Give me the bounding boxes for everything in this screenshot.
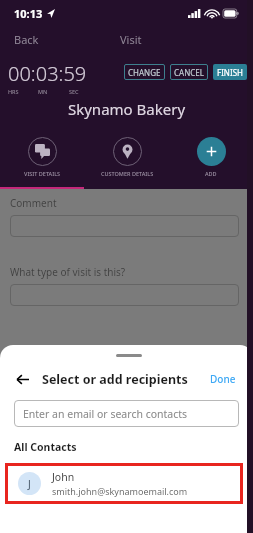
staticText: John	[52, 470, 75, 484]
button[interactable]: CANCEL	[170, 64, 208, 80]
staticText: Comment	[10, 196, 57, 210]
staticText: Select or add recipients	[42, 371, 188, 388]
button[interactable]: Back	[12, 369, 32, 389]
staticText: Visit	[120, 32, 142, 47]
staticText: VISIT DETAILS	[24, 170, 61, 177]
button[interactable]: FINISH	[213, 64, 247, 80]
staticText: ADD	[205, 170, 217, 177]
staticText: J	[28, 477, 31, 491]
staticText: All Contacts	[14, 440, 77, 454]
staticText: 10:13	[14, 6, 43, 21]
staticText: Enter an email or search contacts	[23, 407, 188, 421]
button[interactable]: CUSTOMER DETAILS	[85, 135, 169, 179]
button[interactable]: Back	[10, 30, 43, 49]
button[interactable]: Enter an email or search contacts	[14, 400, 239, 427]
button[interactable]: ADD	[169, 135, 253, 179]
staticText: 00:03:59	[8, 60, 87, 87]
staticText: CANCEL	[174, 67, 204, 78]
staticText: smith.john@skynamoemail.com	[52, 485, 188, 497]
staticText: Skynamo Bakery	[0, 99, 253, 119]
button[interactable]: Done	[207, 369, 239, 389]
staticText: What type of visit is this?	[10, 265, 126, 279]
button[interactable]: VISIT DETAILS	[0, 135, 85, 179]
staticText: SEC	[69, 88, 100, 95]
staticText: HRS	[8, 88, 38, 95]
button[interactable]: J	[8, 466, 240, 501]
staticText: CUSTOMER DETAILS	[101, 170, 154, 177]
staticText: FINISH	[217, 67, 243, 78]
staticText: CHANGE	[128, 67, 161, 78]
staticText: Done	[210, 372, 236, 386]
staticText: MN	[38, 88, 69, 95]
staticText: Back	[14, 32, 39, 47]
button[interactable]: CHANGE	[124, 64, 165, 80]
